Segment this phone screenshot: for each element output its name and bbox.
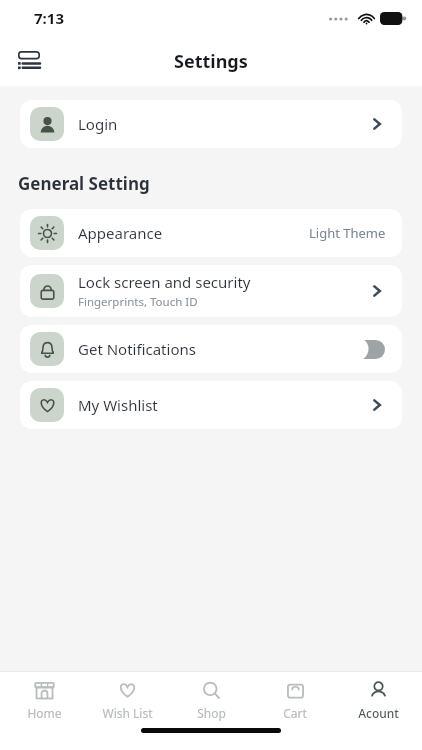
button[interactable]: Home <box>4 676 84 725</box>
staticText: My Wishlist <box>78 395 158 415</box>
staticText: Fingerprints, Touch ID <box>78 294 198 310</box>
button[interactable]: Appearance <box>20 209 402 257</box>
button[interactable]: Login <box>20 100 402 148</box>
button[interactable]: Wish List <box>87 676 167 725</box>
button[interactable]: Menu <box>8 40 50 82</box>
staticText: General Setting <box>18 172 150 195</box>
staticText: Light Theme <box>309 224 386 242</box>
button[interactable]: Cart <box>255 676 335 725</box>
staticText: Wish List <box>102 705 153 721</box>
staticText: Lock screen and security <box>78 272 251 292</box>
button[interactable]: Get Notifications <box>20 325 402 373</box>
other: Open <box>366 280 388 302</box>
staticText: Cart <box>283 705 307 721</box>
button[interactable]: Lock screen and security <box>20 265 402 317</box>
staticText: Shop <box>197 705 226 721</box>
other: Open <box>366 394 388 416</box>
button[interactable]: My Wishlist <box>20 381 402 429</box>
staticText: Login <box>78 114 118 134</box>
staticText: Settings <box>174 49 248 74</box>
staticText: Home <box>27 705 62 721</box>
button[interactable]: Get Notifications toggle <box>344 337 388 361</box>
button[interactable]: Acount <box>338 676 418 725</box>
button[interactable]: Shop <box>171 676 251 725</box>
staticText: 7:13 <box>34 8 64 28</box>
staticText: Acount <box>358 705 399 721</box>
staticText: Get Notifications <box>78 339 196 359</box>
other: Open <box>366 113 388 135</box>
staticText: Appearance <box>78 223 163 243</box>
